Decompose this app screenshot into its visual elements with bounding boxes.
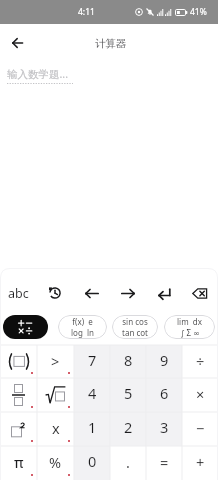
staticText: +	[196, 452, 205, 472]
staticText: 41%	[190, 6, 207, 18]
staticText: x	[52, 418, 60, 438]
button[interactable]: ×	[182, 378, 218, 412]
staticText: π	[14, 453, 24, 472]
button[interactable]: Arithmetic operators	[3, 315, 48, 339]
staticText: abc	[8, 285, 29, 302]
button[interactable]: 2	[110, 412, 146, 446]
button[interactable]	[37, 378, 74, 412]
staticText: 4:11	[78, 6, 95, 18]
button[interactable]: =	[146, 446, 182, 480]
staticText: lim dx	[177, 316, 202, 327]
staticText: ∫ Σ ∞	[180, 327, 200, 338]
staticText: 4	[88, 383, 97, 403]
button[interactable]: 6	[146, 378, 182, 412]
button[interactable]: History	[37, 278, 74, 308]
button[interactable]: .	[110, 446, 146, 480]
button[interactable]: π	[0, 446, 37, 480]
staticText: 2	[124, 417, 133, 437]
staticText: 6	[160, 383, 169, 403]
button[interactable]: lim dx	[164, 315, 215, 339]
staticText: 0	[88, 451, 97, 471]
button[interactable]: Move left	[74, 278, 110, 308]
staticText: 计算器	[95, 37, 127, 50]
button[interactable]: 0	[74, 446, 110, 480]
button[interactable]: x	[37, 412, 74, 446]
button[interactable]	[0, 378, 37, 412]
staticText: log ln	[71, 327, 94, 338]
staticText: ×	[196, 384, 205, 404]
staticText: tan cot	[122, 327, 148, 338]
button[interactable]: 5	[110, 378, 146, 412]
staticText: ÷	[196, 351, 205, 371]
button[interactable]: f(x) e	[58, 315, 107, 339]
button[interactable]: 1	[74, 412, 110, 446]
staticText: 7	[88, 350, 97, 370]
button[interactable]: Enter	[146, 278, 182, 308]
staticText: %	[49, 452, 62, 472]
button[interactable]: sin cos	[112, 315, 158, 339]
button[interactable]: 4	[74, 378, 110, 412]
button[interactable]: >	[37, 345, 74, 378]
staticText: 5	[124, 383, 133, 403]
staticText: .	[126, 452, 130, 472]
staticText: 8	[124, 350, 133, 370]
button[interactable]	[0, 412, 37, 446]
button[interactable]: ÷	[182, 345, 218, 378]
button[interactable]: Backspace	[182, 278, 218, 308]
button[interactable]: 3	[146, 412, 182, 446]
staticText: >	[51, 351, 60, 371]
staticText: 9	[160, 350, 169, 370]
button[interactable]: abc keyboard	[0, 278, 37, 308]
button[interactable]: −	[182, 412, 218, 446]
button[interactable]: Back	[5, 30, 30, 55]
button[interactable]: 7	[74, 345, 110, 378]
staticText: f(x) e	[72, 316, 93, 327]
staticText: −	[196, 418, 205, 438]
staticText: sin cos	[122, 316, 148, 327]
staticText: 1	[88, 417, 97, 437]
button[interactable]: +	[182, 446, 218, 480]
button[interactable]: 8	[110, 345, 146, 378]
staticText: 输入数学题...	[7, 67, 68, 81]
staticText: 3	[160, 417, 169, 437]
staticText: =	[160, 452, 169, 472]
button[interactable]: 9	[146, 345, 182, 378]
button[interactable]: %	[37, 446, 74, 480]
button[interactable]: Move right	[110, 278, 146, 308]
button[interactable]	[0, 345, 37, 378]
